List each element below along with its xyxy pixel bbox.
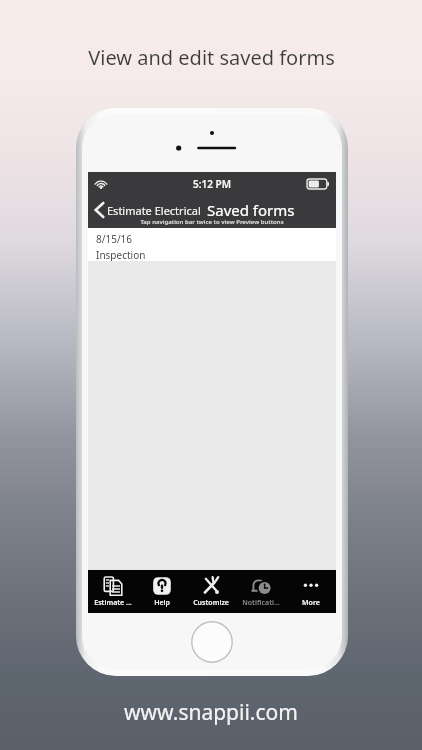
staticText: Estimate ... [94, 598, 132, 608]
button[interactable]: More [286, 570, 336, 613]
staticText: Inspection [96, 248, 146, 261]
staticText: Tap navigation bar twice to view Preview… [140, 218, 284, 226]
button[interactable]: 8/15/16 [88, 228, 336, 261]
staticText: Notificati... [242, 598, 280, 608]
staticText: Customize [193, 598, 229, 608]
staticText: 5:12 PM [193, 177, 231, 191]
button[interactable]: Notificati... [236, 570, 286, 613]
button[interactable]: Help [137, 570, 186, 613]
button[interactable]: Customize [186, 570, 236, 613]
staticText: 8/15/16 [96, 232, 133, 246]
staticText: Estimate Electrical [107, 203, 201, 218]
button[interactable]: Estimate Electrical [93, 201, 203, 219]
staticText: www.snappii.com [0, 698, 422, 727]
staticText: View and edit saved forms [88, 44, 335, 71]
staticText: Help [154, 598, 170, 608]
staticText: Saved forms [207, 200, 295, 220]
button[interactable]: Estimate ... [88, 570, 137, 613]
staticText: More [302, 598, 320, 608]
